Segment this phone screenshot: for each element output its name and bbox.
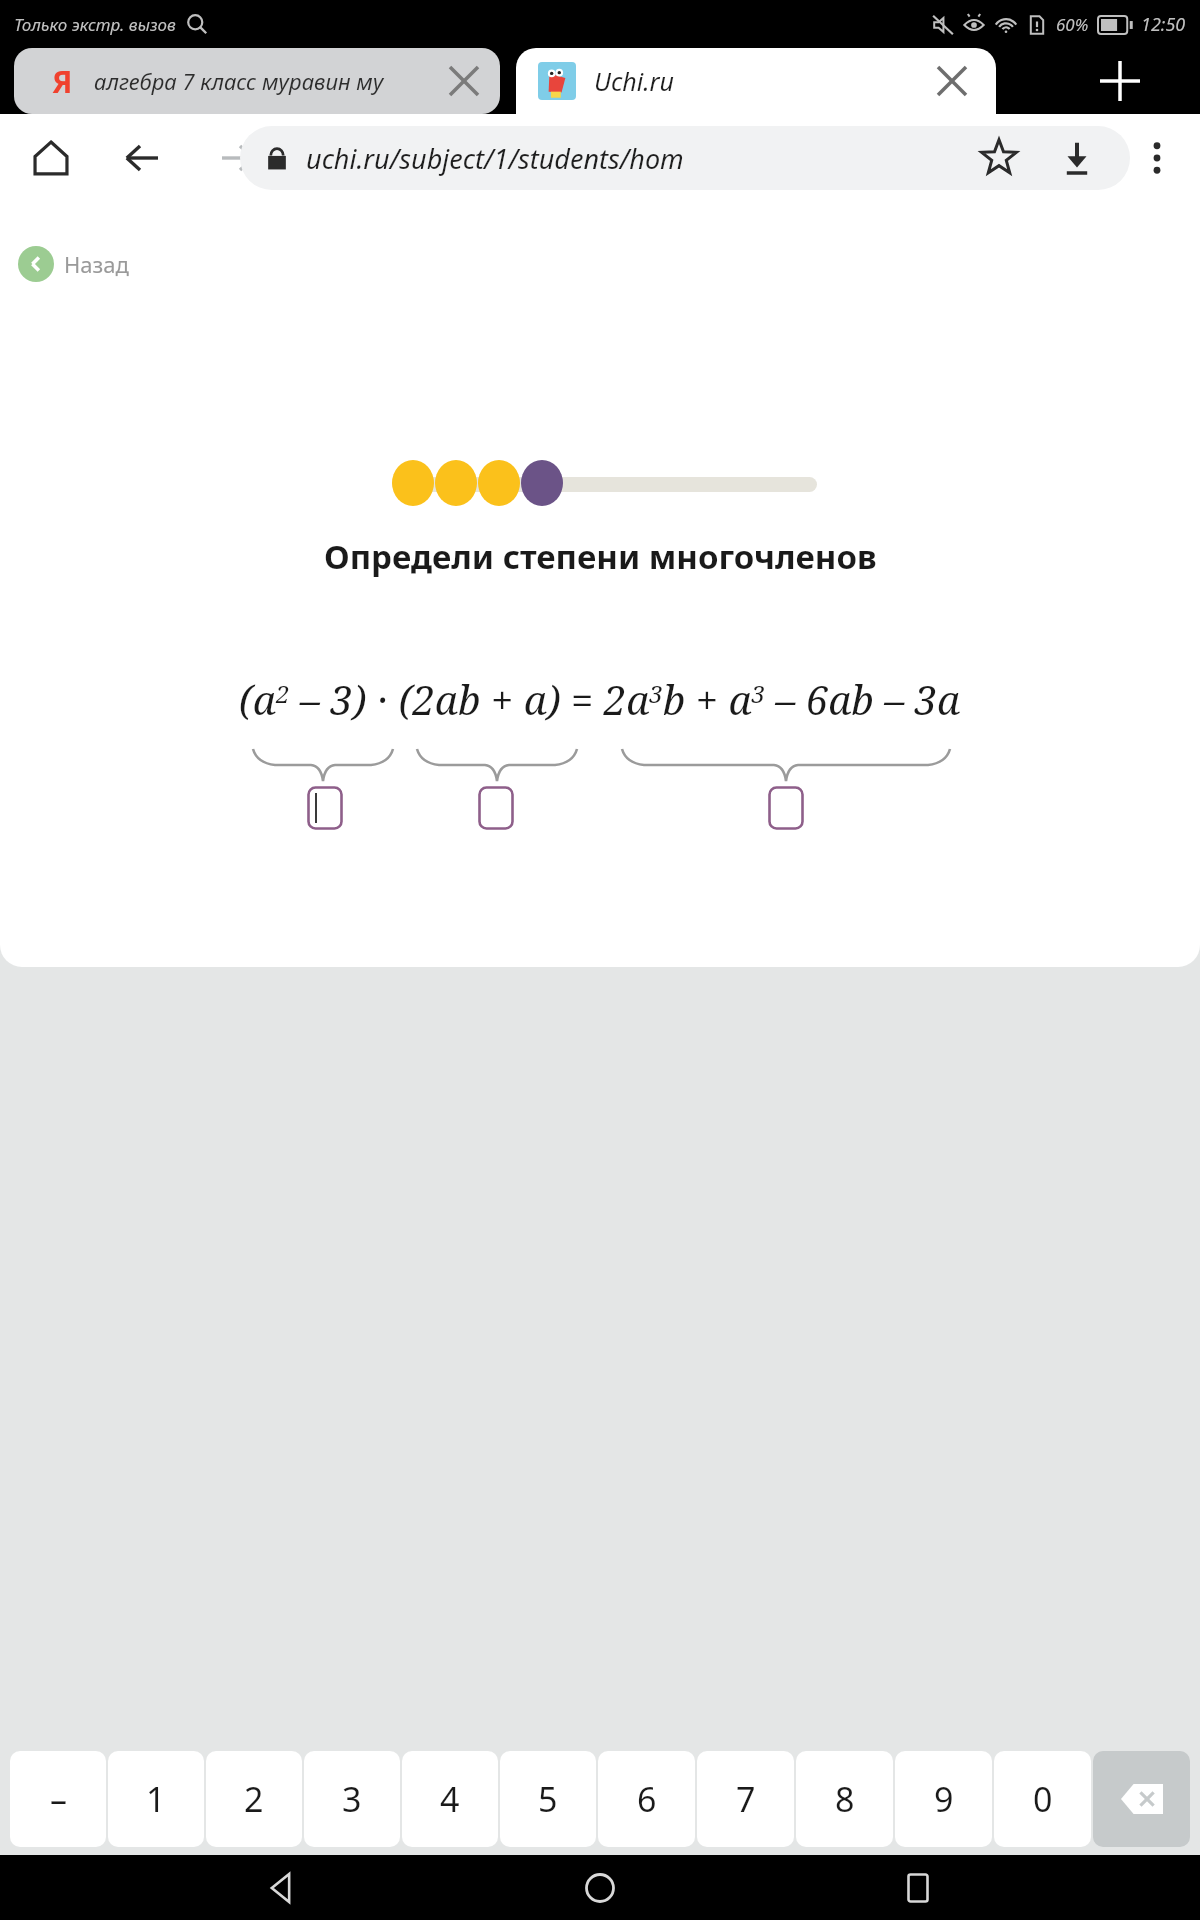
button[interactable]: Reload: [315, 138, 355, 178]
button[interactable]: Close tab: [938, 67, 966, 95]
button[interactable]: Back: [248, 1855, 318, 1920]
button[interactable]: Forward: [218, 138, 258, 178]
button[interactable]: 3: [304, 1751, 400, 1847]
staticText: (a2 – 3) · (2ab + a) = 2a3b + a3 – 6ab –…: [239, 672, 961, 726]
button[interactable]: Назад: [18, 242, 129, 286]
staticText: Назад: [64, 249, 129, 279]
staticText: 5: [538, 1776, 558, 1822]
staticText: 2: [244, 1776, 264, 1822]
button[interactable]: Uchi.ru: [516, 48, 996, 114]
staticText: 9: [934, 1776, 954, 1822]
staticText: 0: [1033, 1776, 1053, 1822]
staticText: 1: [146, 1776, 166, 1822]
button[interactable]: 6: [598, 1751, 695, 1847]
staticText: алгебра 7 класс муравин му: [94, 66, 384, 96]
button[interactable]: 9: [895, 1751, 992, 1847]
staticText: 12:50: [1141, 12, 1186, 37]
button[interactable]: Back: [122, 138, 162, 178]
button[interactable]: Bookmark: [980, 139, 1018, 177]
button[interactable]: New tab: [1100, 61, 1140, 101]
button[interactable]: More options: [1140, 141, 1174, 175]
staticText: Определи степени многочленов: [324, 534, 877, 579]
staticText: Я: [52, 61, 73, 102]
button[interactable]: 2: [206, 1751, 302, 1847]
staticText: –: [50, 1776, 67, 1822]
button[interactable]: [478, 786, 514, 830]
button[interactable]: 4: [402, 1751, 498, 1847]
button[interactable]: Backspace: [1093, 1751, 1190, 1847]
button[interactable]: 5: [500, 1751, 596, 1847]
staticText: 3: [342, 1776, 362, 1822]
button[interactable]: Home: [565, 1855, 635, 1920]
staticText: 4: [440, 1776, 460, 1822]
button[interactable]: 7: [697, 1751, 794, 1847]
staticText: 6: [637, 1776, 657, 1822]
staticText: Uchi.ru: [594, 64, 675, 98]
button[interactable]: 1: [108, 1751, 204, 1847]
button[interactable]: [307, 786, 343, 830]
button[interactable]: 8: [796, 1751, 893, 1847]
staticText: 60%: [1056, 13, 1089, 36]
button[interactable]: [768, 786, 804, 830]
staticText: uchi.ru/subject/1/students/hom: [306, 140, 684, 177]
button[interactable]: Download: [1060, 141, 1094, 175]
button[interactable]: –: [10, 1751, 106, 1847]
staticText: 8: [835, 1776, 855, 1822]
staticText: Только экстр. вызов: [14, 13, 176, 36]
button[interactable]: uchi.ru/subject/1/students/hom: [240, 126, 1130, 190]
button[interactable]: Я: [14, 48, 500, 114]
button[interactable]: Close tab: [450, 67, 478, 95]
button[interactable]: Recent apps: [883, 1855, 953, 1920]
staticText: 7: [736, 1776, 756, 1822]
button[interactable]: Home: [32, 139, 70, 177]
button[interactable]: 0: [994, 1751, 1091, 1847]
